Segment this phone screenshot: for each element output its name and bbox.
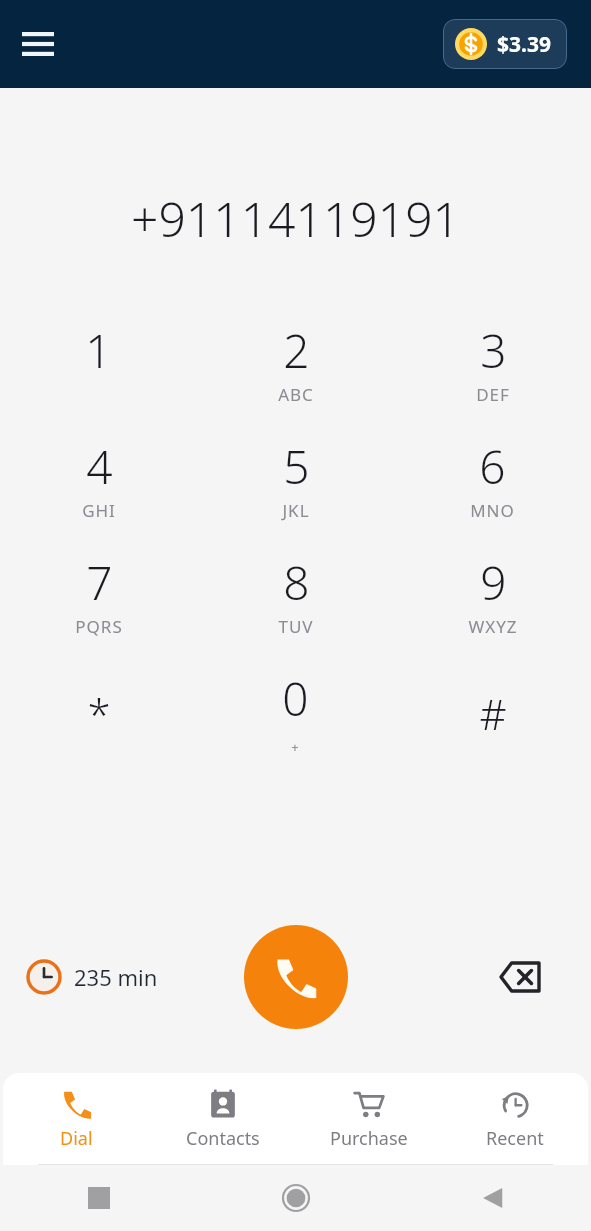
staticText: 8 [283,551,310,614]
button[interactable]: 235 min [22,955,162,999]
button[interactable]: 2 [197,311,394,427]
staticText: 9 [480,551,507,614]
button[interactable]: $3.39 [443,19,567,69]
button[interactable]: Menu [8,14,68,74]
button[interactable]: 6 [394,427,591,543]
staticText: 0 [282,667,309,730]
staticText: 6 [479,435,506,498]
button[interactable]: Purchase [296,1073,442,1165]
button[interactable]: Recents [0,1165,197,1231]
staticText: # [479,685,507,742]
staticText: MNO [470,499,515,522]
staticText: +91114119191 [0,186,591,251]
staticText: ABC [278,383,314,406]
staticText: $3.39 [497,30,551,59]
staticText: 3 [480,319,507,382]
staticText: GHI [82,499,116,522]
staticText: 7 [86,551,113,614]
staticText: DEF [476,383,510,406]
staticText: * [87,685,111,742]
button[interactable]: Home [197,1165,394,1231]
staticText: Dial [60,1126,93,1151]
button[interactable]: 7 [0,543,197,659]
staticText: PQRS [75,615,123,638]
staticText: 4 [86,435,113,498]
staticText: TUV [278,615,314,638]
staticText: 235 min [74,962,158,992]
staticText: 2 [283,319,310,382]
button[interactable]: # [394,659,591,775]
button[interactable]: 3 [394,311,591,427]
button[interactable]: Back [394,1165,591,1231]
button[interactable]: 5 [197,427,394,543]
staticText: JKL [282,499,310,522]
button[interactable]: Call [244,925,348,1029]
button[interactable]: 1 [0,311,197,427]
staticText: Purchase [330,1126,408,1151]
button[interactable]: 9 [394,543,591,659]
button[interactable]: * [0,659,197,775]
staticText: + [291,738,300,756]
staticText: 1 [85,319,112,382]
button[interactable]: Dial [3,1073,150,1165]
button[interactable]: Recent [442,1073,588,1165]
button[interactable]: 8 [197,543,394,659]
button[interactable]: Contacts [150,1073,296,1165]
staticText: Recent [486,1126,544,1151]
staticText: 5 [283,435,310,498]
button[interactable]: 0 [197,659,394,775]
staticText: WXYZ [468,615,518,638]
staticText: Contacts [186,1126,260,1151]
button[interactable]: Backspace [493,950,547,1004]
button[interactable]: 4 [0,427,197,543]
